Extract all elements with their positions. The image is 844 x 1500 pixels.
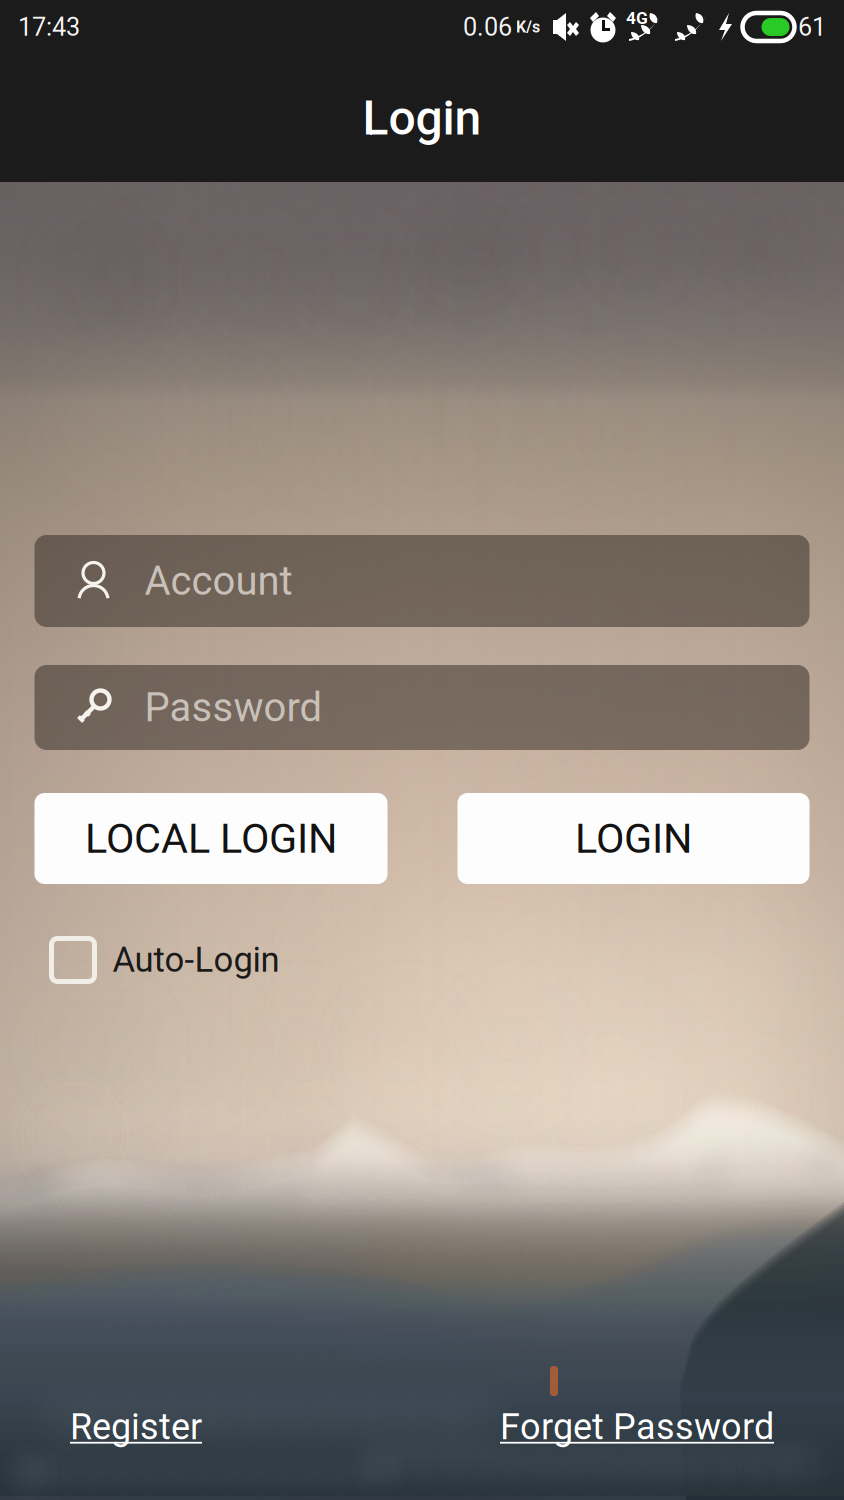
staticText: Auto-Login (112, 940, 279, 980)
staticText: Login (362, 90, 481, 146)
staticText: 0.06 (463, 12, 512, 42)
staticText: LOCAL LOGIN (85, 814, 337, 863)
button[interactable]: LOGIN (457, 793, 809, 884)
staticText: Register (70, 1406, 202, 1448)
button[interactable]: LOCAL LOGIN (34, 793, 387, 884)
button[interactable]: Auto-Login (34, 936, 809, 984)
staticText: 61 (798, 12, 826, 42)
staticText: Forget Password (500, 1406, 774, 1448)
button[interactable]: Forget Password (500, 1406, 774, 1448)
button[interactable]: Register (70, 1406, 202, 1448)
staticText: K/s (516, 18, 540, 36)
staticText: LOGIN (575, 814, 692, 863)
staticText: 17:43 (18, 12, 80, 42)
staticText: 4G (626, 8, 648, 28)
staticText: Account (144, 558, 292, 604)
staticText: Password (144, 684, 322, 731)
